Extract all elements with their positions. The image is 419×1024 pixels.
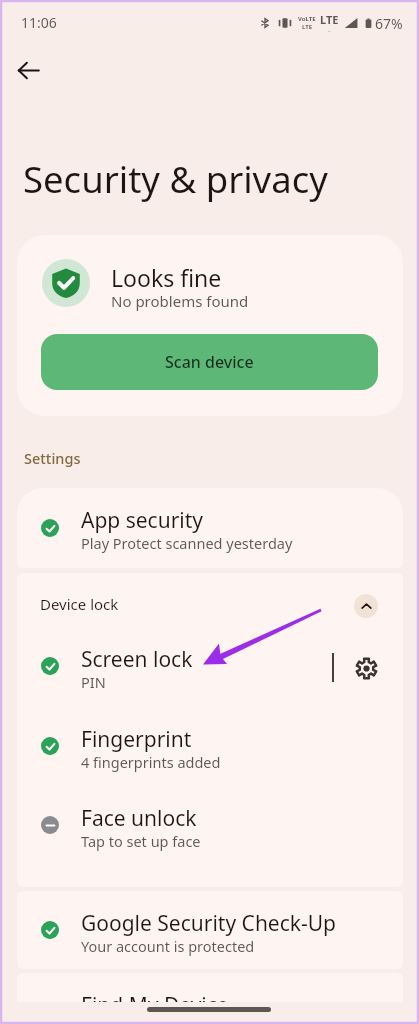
button[interactable]: Device lock xyxy=(17,573,403,628)
button[interactable]: Google Security Check-Up xyxy=(17,891,403,969)
staticText: App security xyxy=(81,506,204,535)
staticText: Face unlock xyxy=(81,804,197,833)
staticText: Device lock xyxy=(40,594,119,614)
button[interactable]: Screen lock xyxy=(17,627,327,706)
staticText: 67% xyxy=(375,14,403,33)
staticText: Screen lock xyxy=(81,645,193,674)
staticText: VoLTE xyxy=(298,15,316,23)
button[interactable]: Collapse xyxy=(354,594,378,618)
staticText: PIN xyxy=(81,672,106,692)
staticText: 4 fingerprints added xyxy=(81,752,221,772)
staticText: Looks fine xyxy=(111,262,222,293)
staticText: Google Security Check-Up xyxy=(81,909,337,938)
staticText: No problems found xyxy=(111,291,249,311)
staticText: Your account is protected xyxy=(81,936,255,956)
staticText: LTE xyxy=(320,12,339,27)
button[interactable]: Fingerprint xyxy=(17,707,403,786)
button[interactable]: Scan device xyxy=(41,334,378,390)
staticText: Settings xyxy=(24,448,81,468)
staticText: 11:06 xyxy=(21,13,57,32)
button[interactable]: Screen lock settings xyxy=(342,644,390,692)
button[interactable]: App security xyxy=(17,488,403,568)
staticText: Play Protect scanned yesterday xyxy=(81,533,293,553)
button[interactable]: Find My Device xyxy=(17,973,403,1002)
staticText: Tap to set up face xyxy=(81,831,201,851)
button[interactable]: Back xyxy=(6,48,50,92)
staticText: Find My Device xyxy=(81,991,229,1002)
button[interactable]: Face unlock xyxy=(17,786,403,865)
staticText: LTE xyxy=(302,23,313,31)
staticText: Security & privacy xyxy=(23,154,328,204)
staticText: Scan device xyxy=(165,351,254,373)
staticText: .. xyxy=(328,27,331,34)
staticText: Fingerprint xyxy=(81,725,192,754)
